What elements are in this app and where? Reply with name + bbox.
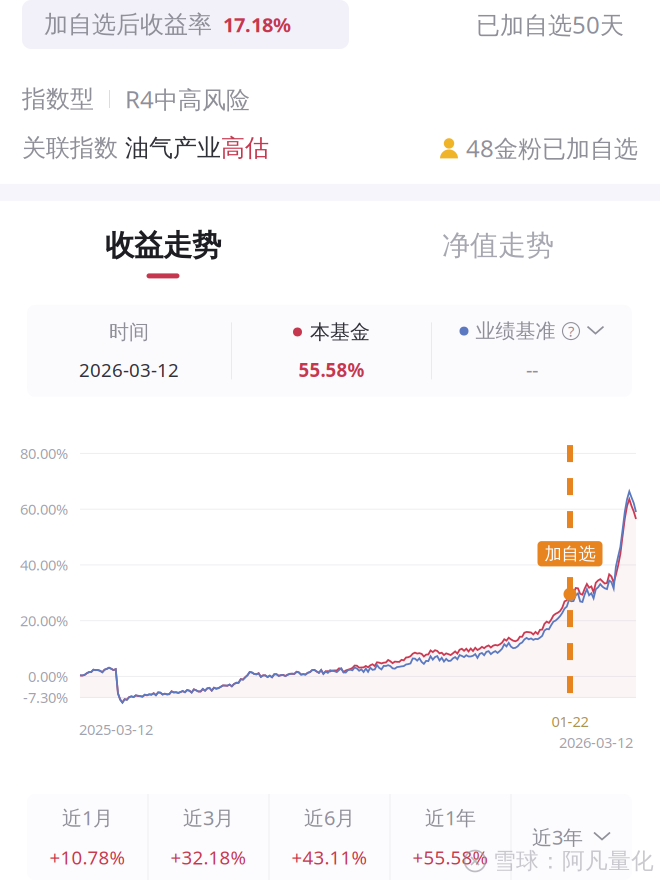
staticText: 加自选后收益率	[44, 10, 212, 39]
button[interactable]: 净值走势	[437, 201, 559, 305]
button[interactable]: 近6月	[269, 794, 389, 880]
button[interactable]: 近1年	[390, 794, 510, 880]
staticText: 48金粉已加自选	[466, 132, 638, 164]
staticText: 雪球：阿凡量化	[493, 847, 654, 875]
staticText: 业绩基准	[475, 319, 555, 343]
staticText: 2026-03-12	[559, 733, 633, 752]
staticText: 近3年	[532, 824, 583, 850]
staticText: +43.11%	[291, 845, 367, 870]
staticText: +32.18%	[170, 845, 246, 870]
staticText: 已加自选50天	[476, 9, 624, 40]
staticText: 净值走势	[442, 228, 554, 263]
staticText: 近1月	[62, 804, 113, 831]
staticText: 高估	[221, 133, 269, 163]
staticText: R4中高风险	[125, 83, 250, 115]
staticText: -7.30%	[23, 688, 68, 707]
staticText: 40.00%	[20, 555, 68, 575]
staticText: +10.78%	[49, 845, 125, 870]
staticText: 油气产业	[125, 133, 221, 163]
staticText: 2025-03-12	[79, 720, 153, 739]
staticText: 80.00%	[20, 444, 68, 463]
staticText: 55.58%	[298, 357, 364, 382]
staticText: 时间	[109, 320, 149, 344]
staticText: 关联指数	[22, 133, 125, 163]
button[interactable]: 近1月	[27, 794, 147, 880]
staticText: 加自选	[544, 543, 595, 564]
button[interactable]: 近3月	[148, 794, 268, 880]
staticText: 收益走势	[105, 227, 221, 263]
button[interactable]: 近3年	[511, 794, 631, 880]
staticText: 2026-03-12	[79, 357, 179, 382]
staticText: 本基金	[310, 320, 370, 344]
staticText: 近3月	[183, 804, 234, 831]
staticText: 17.18%	[223, 11, 291, 38]
staticText: 近1年	[425, 804, 476, 831]
staticText: ?	[568, 321, 574, 341]
staticText: --	[526, 356, 538, 383]
button[interactable]: 业绩基准	[432, 319, 632, 383]
staticText: 01-22	[551, 712, 588, 731]
staticText: 20.00%	[20, 611, 68, 630]
button[interactable]: 收益走势	[102, 201, 224, 305]
staticText: 近6月	[304, 804, 355, 831]
staticText: 60.00%	[20, 499, 68, 519]
staticText: +55.58%	[412, 845, 488, 870]
staticText: 0.00%	[28, 667, 68, 686]
staticText: 指数型	[22, 84, 94, 114]
